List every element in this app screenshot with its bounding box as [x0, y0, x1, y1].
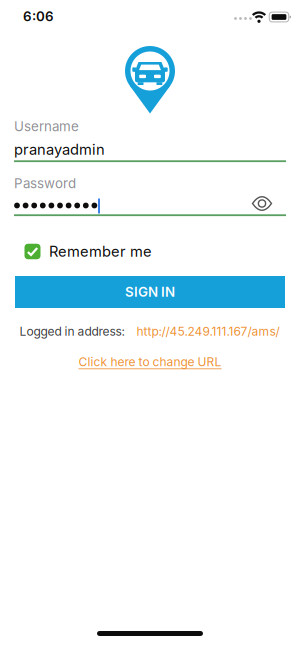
- staticText: Remember me: [49, 243, 152, 260]
- staticText: Username: [14, 119, 79, 134]
- button[interactable]: Show password: [247, 188, 277, 218]
- button[interactable]: Click here to change URL: [78, 355, 221, 369]
- staticText: Password: [14, 176, 76, 191]
- button[interactable]: http://45.249.111.167/ams/: [136, 324, 279, 339]
- staticText: pranayadmin: [14, 141, 105, 158]
- button[interactable]: SIGN IN: [15, 276, 285, 308]
- staticText: Logged in address:: [19, 324, 124, 339]
- staticText: http://45.249.111.167/ams/: [136, 324, 279, 339]
- staticText: Click here to change URL: [78, 355, 221, 369]
- staticText: SIGN IN: [125, 284, 175, 300]
- button[interactable]: Remember me: [0, 239, 300, 263]
- staticText: 6:06: [23, 9, 54, 24]
